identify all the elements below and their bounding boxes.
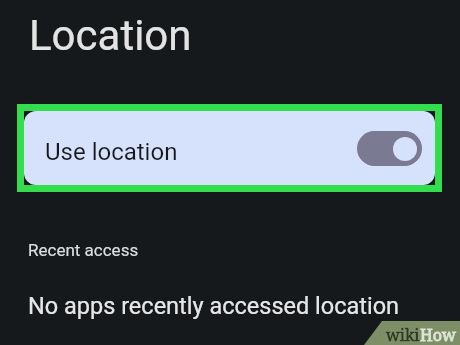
staticText: wiki	[386, 324, 420, 345]
button[interactable]: No apps recently accessed location	[0, 276, 460, 332]
staticText: How	[420, 324, 456, 345]
staticText: Use location	[45, 138, 178, 166]
button[interactable]: Use location	[24, 111, 435, 185]
button[interactable]: Use location, on	[357, 131, 422, 166]
staticText: No apps recently accessed location	[28, 292, 400, 320]
staticText: Recent access	[28, 240, 139, 260]
staticText: Location	[29, 11, 192, 60]
